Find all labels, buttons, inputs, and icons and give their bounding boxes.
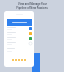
staticText: Pipeline of New Passions: [16, 6, 48, 10]
staticText: View and Manage Your: [18, 2, 47, 6]
button[interactable]: [7, 26, 32, 31]
button[interactable]: [7, 31, 32, 36]
button[interactable]: [7, 19, 32, 26]
button[interactable]: [7, 41, 32, 46]
button[interactable]: [7, 36, 32, 41]
